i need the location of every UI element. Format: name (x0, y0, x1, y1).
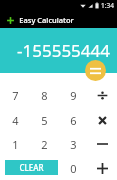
staticText: -155555444 (17, 39, 110, 62)
button[interactable]: Multiply (88, 108, 117, 132)
button[interactable]: 1 (0, 132, 30, 156)
button[interactable]: 7 (0, 83, 30, 108)
staticText: Easy Calculator (19, 15, 74, 25)
button[interactable]: 5 (30, 108, 59, 132)
staticText: 7 (12, 88, 19, 103)
staticText: 4 (12, 113, 19, 128)
button[interactable]: 3 (59, 132, 88, 156)
button[interactable]: 4 (0, 108, 30, 132)
staticText: 6 (70, 113, 77, 128)
staticText: 3 (70, 137, 77, 152)
staticText: 8 (41, 88, 48, 103)
staticText: CLEAR (19, 162, 44, 173)
button[interactable]: 6 (59, 108, 88, 132)
button[interactable]: Add (88, 156, 117, 180)
button[interactable]: Subtract (88, 132, 117, 156)
staticText: 1:34 (101, 1, 114, 10)
staticText: 1 (12, 137, 19, 152)
staticText: 5 (41, 113, 48, 128)
button[interactable]: 0 (59, 156, 88, 180)
button[interactable]: Add (4, 14, 16, 26)
button[interactable]: Equals (85, 60, 106, 81)
button[interactable]: CLEAR (5, 160, 58, 175)
button[interactable]: 9 (59, 83, 88, 108)
staticText: 2 (41, 137, 48, 152)
button[interactable]: 8 (30, 83, 59, 108)
button[interactable]: 2 (30, 132, 59, 156)
staticText: 0 (70, 161, 77, 176)
button[interactable]: Divide (88, 83, 117, 108)
staticText: 9 (70, 88, 77, 103)
